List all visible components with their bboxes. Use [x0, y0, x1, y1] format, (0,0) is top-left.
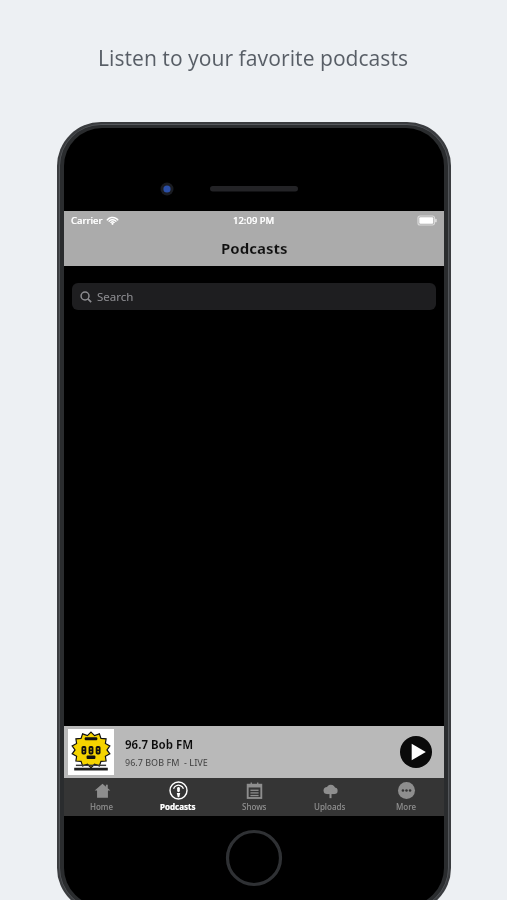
- staticText: Podcasts: [160, 801, 196, 812]
- button[interactable]: Search: [72, 283, 436, 310]
- staticText: Uploads: [314, 801, 346, 812]
- button[interactable]: Play: [400, 736, 432, 768]
- button[interactable]: More: [368, 778, 444, 816]
- staticText: Podcasts: [221, 238, 288, 258]
- staticText: More: [396, 801, 417, 812]
- button[interactable]: Home: [64, 778, 140, 816]
- button[interactable]: Podcasts: [140, 778, 216, 816]
- staticText: Carrier: [71, 214, 103, 227]
- staticText: 96.7 Bob FM: [125, 737, 194, 753]
- staticText: Search: [97, 289, 134, 305]
- button[interactable]: 96.7 Bob FM: [64, 726, 444, 778]
- button[interactable]: Uploads: [292, 778, 368, 816]
- staticText: 12:09 PM: [233, 214, 275, 227]
- staticText: Listen to your favorite podcasts: [98, 44, 409, 73]
- staticText: 96.7 BOB FM - LIVE: [125, 756, 208, 768]
- button[interactable]: Shows: [216, 778, 292, 816]
- staticText: Shows: [242, 801, 267, 812]
- staticText: Home: [90, 801, 114, 812]
- button[interactable]: Home button: [226, 830, 282, 886]
